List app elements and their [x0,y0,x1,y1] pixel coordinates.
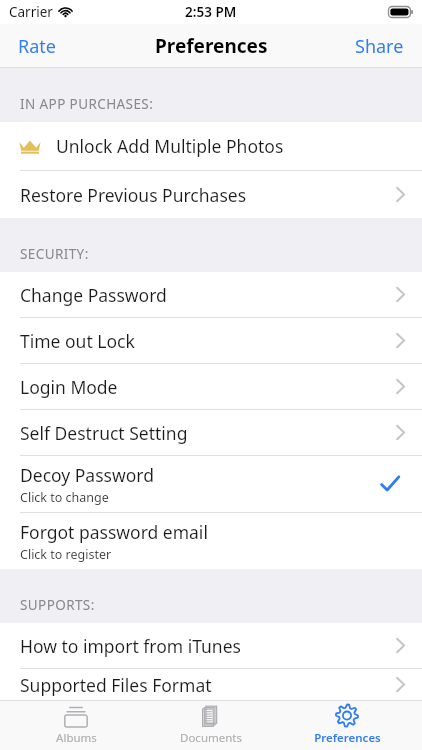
staticText: Preferences [155,33,268,59]
staticText: Change Password [20,283,167,307]
staticText: Carrier [9,3,53,21]
button[interactable]: Time out Lock [0,318,422,363]
staticText: 2:53 PM [185,3,237,21]
staticText: Click to register [20,546,112,563]
button[interactable]: Unlock Add Multiple Photos [0,122,422,170]
button[interactable]: Documents [151,701,271,750]
button[interactable]: Login Mode [0,364,422,409]
button[interactable]: Decoy Password [0,456,422,512]
button[interactable]: Albums [16,701,136,750]
button[interactable]: Change Password [0,272,422,317]
staticText: Rate [18,34,56,59]
staticText: Unlock Add Multiple Photos [56,134,284,158]
staticText: Forgot password email [20,520,208,544]
staticText: Share [355,34,404,59]
staticText: Preferences [314,730,381,746]
staticText: Click to change [20,489,109,506]
staticText: Supported Files Format [20,673,212,697]
staticText: Restore Previous Purchases [20,183,247,207]
button[interactable]: Rate [0,24,74,68]
button[interactable]: Self Destruct Setting [0,410,422,455]
button[interactable]: Forgot password email [0,513,422,569]
button[interactable]: Restore Previous Purchases [0,171,422,218]
staticText: SUPPORTS: [20,596,95,614]
button[interactable]: Preferences [287,701,407,750]
button[interactable]: Supported Files Format [0,669,422,700]
staticText: Decoy Password [20,463,154,487]
staticText: IN APP PURCHASES: [20,95,154,113]
staticText: SECURITY: [20,245,89,263]
button[interactable]: Share [337,24,422,68]
staticText: Self Destruct Setting [20,421,188,445]
staticText: Login Mode [20,375,118,399]
staticText: Time out Lock [20,329,135,353]
staticText: Albums [56,730,97,746]
staticText: How to import from iTunes [20,634,241,658]
button[interactable]: How to import from iTunes [0,623,422,668]
staticText: Documents [180,730,242,746]
